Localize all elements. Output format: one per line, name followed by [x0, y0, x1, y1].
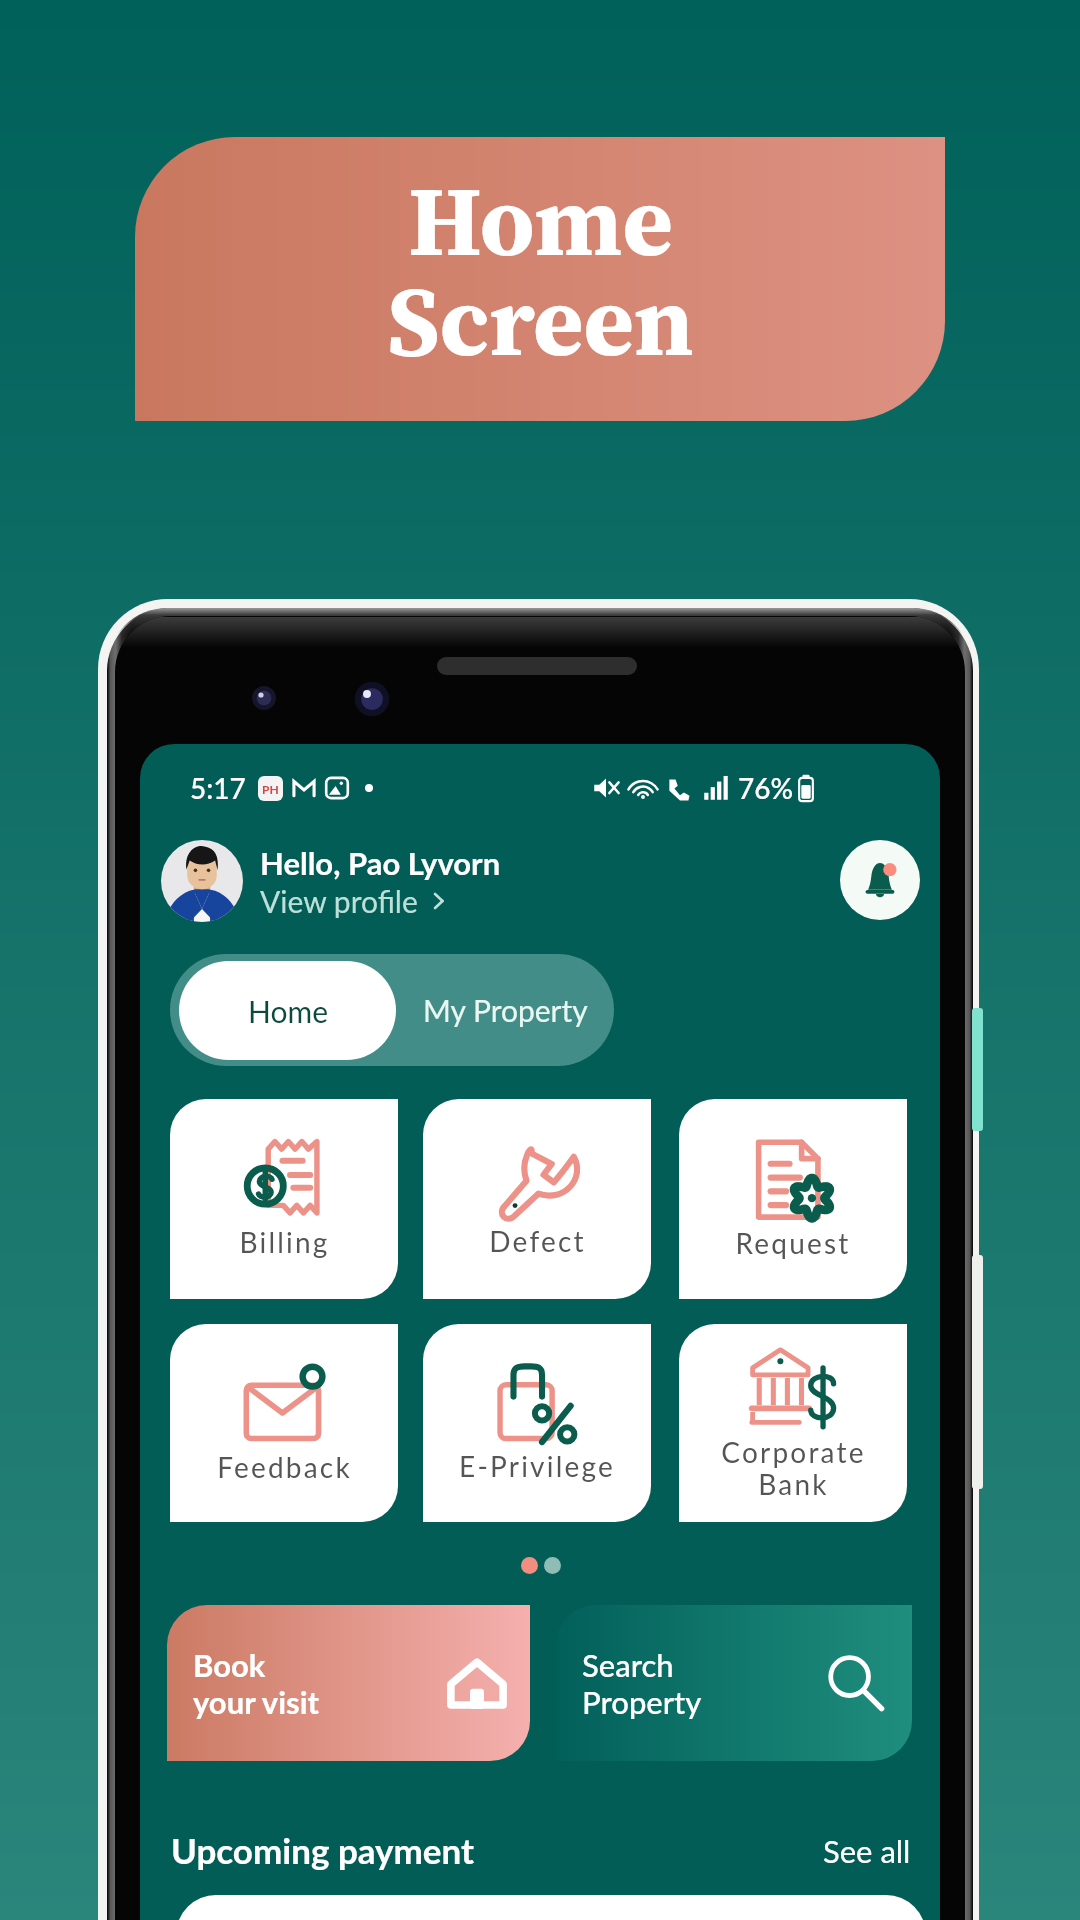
button[interactable]: See all: [823, 1832, 911, 1869]
staticText: Home Screen: [387, 155, 694, 387]
button[interactable]: [176, 1895, 926, 1920]
staticText: Search Property: [582, 1646, 702, 1721]
staticText: Defect: [489, 1224, 586, 1258]
staticText: Corporate Bank: [721, 1435, 866, 1501]
staticText: Book your visit: [193, 1646, 320, 1721]
staticText: E-Privilege: [459, 1449, 615, 1483]
button[interactable]: Request: [679, 1099, 907, 1299]
staticText: Home: [248, 993, 328, 1029]
staticText: My Property: [423, 992, 588, 1028]
button[interactable]: My Property: [396, 954, 614, 1066]
staticText: Feedback: [217, 1450, 352, 1484]
button[interactable]: Corporate Bank: [679, 1324, 907, 1522]
button[interactable]: Search Property: [556, 1605, 912, 1761]
staticText: Hello, Pao Lyvorn: [260, 844, 501, 881]
button[interactable]: E-Privilege: [423, 1324, 651, 1522]
button[interactable]: Book your visit: [167, 1605, 530, 1761]
staticText: See all: [823, 1832, 911, 1869]
staticText: 76%: [738, 771, 794, 805]
staticText: View profile: [260, 883, 418, 919]
staticText: Request: [735, 1226, 851, 1260]
staticText: Upcoming payment: [171, 1829, 474, 1871]
button[interactable]: Home: [179, 961, 396, 1060]
button[interactable]: Defect: [423, 1099, 651, 1299]
staticText: 5:17: [190, 771, 246, 805]
button[interactable]: Hello, Pao Lyvorn: [161, 840, 501, 922]
button[interactable]: Billing: [170, 1099, 398, 1299]
button[interactable]: Notifications: [840, 840, 920, 920]
button[interactable]: Feedback: [170, 1324, 398, 1522]
staticText: Billing: [239, 1225, 330, 1259]
staticText: PH: [262, 782, 279, 796]
